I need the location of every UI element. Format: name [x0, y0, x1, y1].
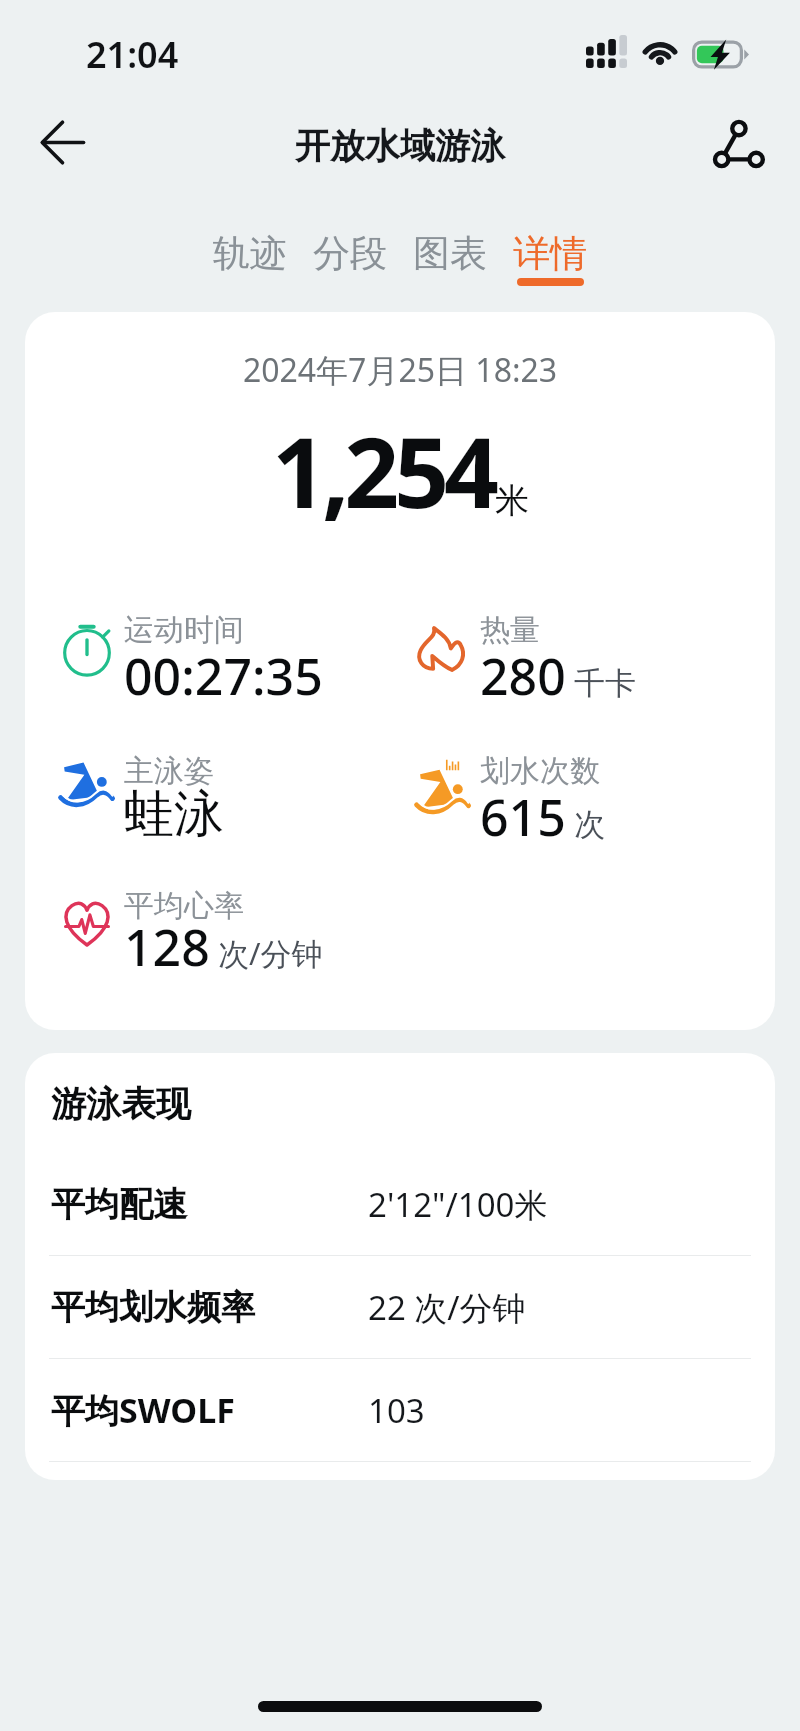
button[interactable]: 详情	[500, 200, 600, 286]
staticText: 米	[495, 479, 529, 522]
staticText: 280	[480, 642, 566, 710]
button[interactable]: 图表	[400, 200, 500, 286]
staticText: 运动时间	[124, 611, 244, 649]
staticText: 热量	[480, 611, 540, 649]
staticText: 分段	[313, 230, 387, 277]
button[interactable]: 平均划水频率	[25, 1256, 775, 1358]
staticText: 图表	[413, 230, 487, 277]
button[interactable]: Share	[698, 108, 778, 188]
staticText: 2'12"/100米	[368, 1182, 548, 1227]
staticText: 轨迹	[213, 230, 287, 277]
staticText: 平均SWOLF	[51, 1387, 235, 1433]
staticText: 平均划水频率	[51, 1286, 255, 1329]
staticText: 平均心率	[124, 887, 244, 925]
staticText: 平均配速	[51, 1183, 187, 1226]
button[interactable]: 轨迹	[200, 200, 300, 286]
button[interactable]: 分段	[300, 200, 400, 286]
staticText: 次/分钟	[210, 932, 323, 974]
staticText: 详情	[513, 230, 587, 277]
staticText: 128	[124, 913, 210, 981]
button[interactable]: Back	[22, 108, 102, 188]
staticText: 21:04	[86, 30, 179, 79]
staticText: 103	[368, 1388, 425, 1433]
button[interactable]: 平均SWOLF	[25, 1359, 775, 1461]
staticText: 00:27:35	[124, 642, 323, 710]
staticText: 千卡	[566, 661, 637, 703]
staticText: 22 次/分钟	[368, 1285, 526, 1330]
staticText: 1,254	[272, 405, 495, 536]
staticText: 划水次数	[480, 752, 600, 790]
staticText: 2024年7月25日 18:23	[25, 348, 775, 392]
staticText: 次	[566, 802, 606, 844]
staticText: 蛙泳	[124, 783, 224, 846]
staticText: 615	[480, 783, 566, 851]
staticText: 开放水域游泳	[295, 124, 505, 168]
staticText: 游泳表现	[51, 1082, 191, 1126]
staticText: 主泳姿	[124, 752, 214, 790]
button[interactable]: 平均配速	[25, 1153, 775, 1255]
